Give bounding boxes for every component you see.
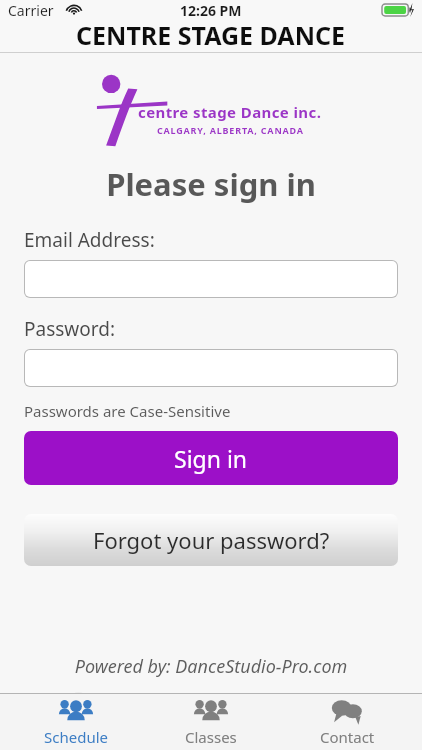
other: Contact xyxy=(328,697,366,725)
other: People xyxy=(57,697,95,725)
staticText: Schedule xyxy=(44,727,108,747)
staticText: 12:26 PM xyxy=(180,1,242,20)
staticText: Powered by: DanceStudio-Pro.com xyxy=(0,654,422,679)
button[interactable]: People xyxy=(151,694,271,750)
other: People xyxy=(192,697,230,725)
staticText: Email Address: xyxy=(24,227,155,253)
staticText: © 2017 CENTRE STAGE DANCE xyxy=(0,686,422,713)
staticText: Forgot your password? xyxy=(93,525,330,555)
button[interactable]: Sign in xyxy=(24,431,398,485)
staticText: Sign in xyxy=(174,443,248,474)
staticText: CALGARY, ALBERTA, CANADA xyxy=(157,124,304,136)
staticText: Contact xyxy=(320,727,375,747)
staticText: Passwords are Case-Sensitive xyxy=(24,401,231,421)
staticText: Please sign in xyxy=(0,163,422,205)
button[interactable]: Forgot your password? xyxy=(24,514,398,566)
staticText: CENTRE STAGE DANCE xyxy=(76,18,346,50)
staticText: Carrier xyxy=(8,1,54,20)
staticText: centre stage Dance inc. xyxy=(138,102,322,122)
button[interactable]: Contact xyxy=(287,694,407,750)
staticText: Classes xyxy=(185,727,237,747)
staticText: Password: xyxy=(24,316,116,342)
button[interactable]: People xyxy=(16,694,136,750)
